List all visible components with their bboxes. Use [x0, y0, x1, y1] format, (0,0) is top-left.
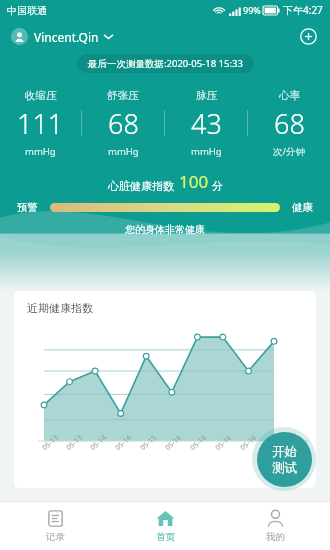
staticText: 开始 [272, 444, 297, 460]
button[interactable]: 我的 [220, 502, 330, 550]
staticText: 05-16 [163, 433, 184, 453]
staticText: 次/分钟 [273, 145, 306, 158]
button[interactable]: 记录 [0, 502, 110, 550]
staticText: 99% [243, 4, 261, 16]
button[interactable]: 最后一次测量数据:2020-05-18 15:33 [77, 54, 254, 73]
staticText: 我的 [266, 531, 285, 543]
staticText: mmHg [191, 145, 222, 158]
staticText: 05-16 [213, 433, 234, 453]
staticText: 记录 [46, 531, 65, 543]
staticText: 43 [191, 105, 222, 142]
button[interactable]: 近期健康指数 [14, 291, 316, 488]
button[interactable]: 舒张压 [82, 89, 164, 158]
staticText: 近期健康指数 [27, 301, 93, 315]
staticText: 05-14 [113, 433, 134, 453]
staticText: 68 [274, 105, 305, 142]
staticText: 100 [179, 170, 209, 193]
staticText: 测试 [272, 460, 297, 476]
staticText: mmHg [25, 145, 56, 158]
button[interactable]: Add device [295, 23, 321, 49]
staticText: 脉压 [196, 89, 217, 102]
button[interactable]: 首页 [110, 502, 220, 550]
staticText: 最后一次测量数据:2020-05-18 15:33 [88, 57, 243, 70]
staticText: 您的身体非常健康 [125, 223, 205, 236]
button[interactable]: Vincent.Qin [9, 26, 115, 47]
staticText: 舒张压 [107, 89, 139, 102]
staticText: 健康 [292, 201, 313, 214]
button[interactable]: 心率 [248, 89, 330, 158]
staticText: 05-13 [40, 433, 61, 453]
button[interactable]: 脉压 [165, 89, 247, 158]
staticText: 05-14 [88, 433, 109, 453]
staticText: 心脏健康指数 [108, 179, 174, 193]
staticText: 68 [108, 105, 139, 142]
staticText: 预警 [17, 201, 38, 214]
staticText: 05-13 [64, 433, 85, 453]
staticText: 05-16 [188, 433, 209, 453]
staticText: 下午4:27 [283, 3, 323, 17]
staticText: 05-15 [138, 433, 159, 453]
button[interactable]: 开始 [257, 432, 312, 487]
staticText: 首页 [156, 531, 175, 543]
staticText: 111 [17, 105, 64, 142]
staticText: 收缩压 [25, 89, 57, 102]
staticText: 分 [212, 179, 223, 193]
staticText: 05-18 [263, 433, 284, 453]
staticText: 心率 [279, 89, 300, 102]
staticText: mmHg [108, 145, 139, 158]
button[interactable]: 收缩压 [0, 89, 81, 158]
staticText: 05-16 [238, 433, 259, 453]
staticText: Vincent.Qin [34, 29, 99, 45]
staticText: 中国联通 [7, 4, 47, 17]
